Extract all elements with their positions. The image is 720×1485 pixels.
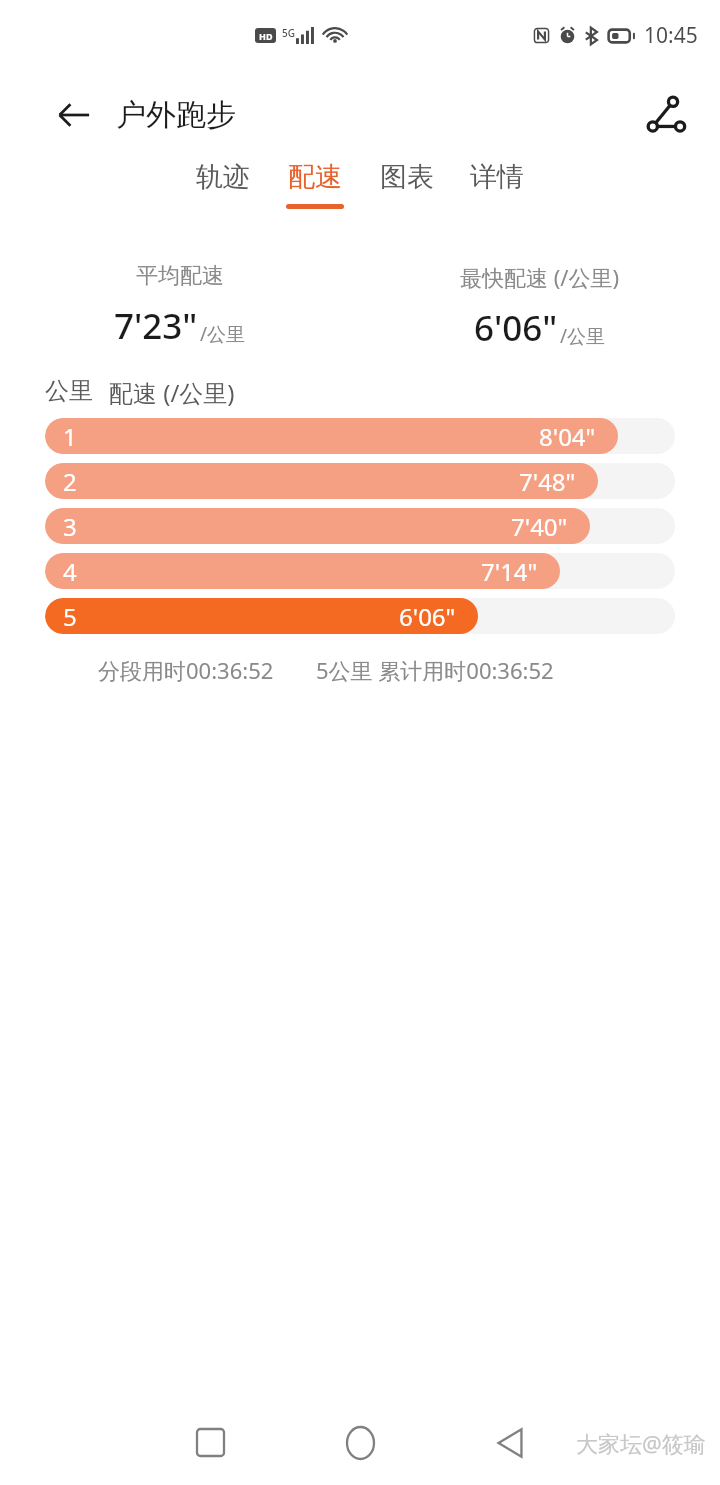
staticText: 最快配速 (/公里) [460,262,620,292]
button[interactable]: 1 [45,418,675,454]
staticText: /公里 [560,323,606,349]
button[interactable]: 3 [45,508,675,544]
button[interactable]: Share [640,89,692,141]
staticText: 配速 [288,160,342,194]
staticText: /公里 [200,321,246,347]
staticText: 5G [282,26,295,40]
button[interactable]: 5 [45,598,675,634]
button[interactable]: Back [435,1400,585,1485]
button[interactable]: Recents [135,1400,285,1485]
button[interactable]: 详情 [452,160,542,204]
staticText: 平均配速 [136,262,224,290]
staticText: 户外跑步 [116,96,236,134]
staticText: 4 [63,555,77,588]
staticText: HD [259,30,273,42]
button[interactable]: 4 [45,553,675,589]
staticText: 配速 (/公里) [109,376,235,409]
staticText: 大家坛@筱瑜 [576,1428,706,1458]
staticText: 轨迹 [196,160,250,194]
staticText: 3 [63,510,77,543]
staticText: 图表 [380,160,434,194]
staticText: 5 [63,600,77,633]
staticText: 分段用时00:36:52 [98,655,274,685]
staticText: 1 [63,420,77,453]
button[interactable]: 配速 [268,160,362,209]
staticText: 7'48" [519,465,576,498]
staticText: 5公里 累计用时00:36:52 [316,655,554,685]
staticText: 公里 [45,376,93,406]
staticText: 6'06" [399,600,456,633]
staticText: 7'40" [511,510,568,543]
button[interactable]: 轨迹 [178,160,268,204]
button[interactable]: 2 [45,463,675,499]
button[interactable]: Home [285,1400,435,1485]
staticText: 7'14" [481,555,538,588]
staticText: 6'06" [474,304,558,352]
staticText: 10:45 [644,21,698,50]
staticText: 7'23" [114,302,198,350]
button[interactable]: 户外跑步 [48,88,244,142]
button[interactable]: 图表 [362,160,452,204]
staticText: 8'04" [539,420,596,453]
staticText: 2 [63,465,77,498]
staticText: 详情 [470,160,524,194]
